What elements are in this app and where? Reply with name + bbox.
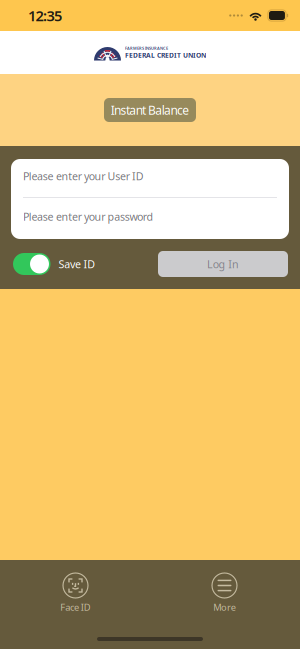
staticText: FARMERS INSURANCE: [125, 45, 168, 51]
button[interactable]: Save ID: [13, 253, 95, 275]
button[interactable]: Instant Balance: [104, 98, 196, 122]
staticText: More: [213, 601, 236, 613]
staticText: FEDERAL CREDIT UNION: [125, 51, 206, 60]
staticText: Log In: [207, 257, 239, 271]
staticText: Please enter your User ID: [23, 169, 144, 183]
staticText: Please enter your password: [23, 209, 153, 224]
button[interactable]: Face ID: [1, 573, 150, 621]
staticText: Instant Balance: [111, 102, 189, 118]
staticText: Face ID: [60, 601, 91, 613]
button[interactable]: More: [150, 573, 299, 621]
button[interactable]: Log In: [158, 251, 288, 277]
staticText: Save ID: [58, 257, 95, 271]
staticText: 12:35: [28, 6, 62, 25]
